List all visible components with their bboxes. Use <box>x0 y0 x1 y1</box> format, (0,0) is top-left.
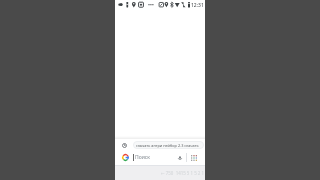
button[interactable]: Recent search <box>115 140 205 150</box>
staticText: 12:31 <box>191 2 204 9</box>
other: Recent search <box>122 143 127 148</box>
button[interactable]: Voice search <box>177 155 183 161</box>
staticText: ← 750 1415 5 1 5 2 1 <box>161 170 204 176</box>
staticText: Поиск <box>135 154 150 161</box>
button[interactable]: Google apps <box>191 155 197 161</box>
staticText: скачать ангри нейбор 2.3 скачать <box>136 143 199 148</box>
